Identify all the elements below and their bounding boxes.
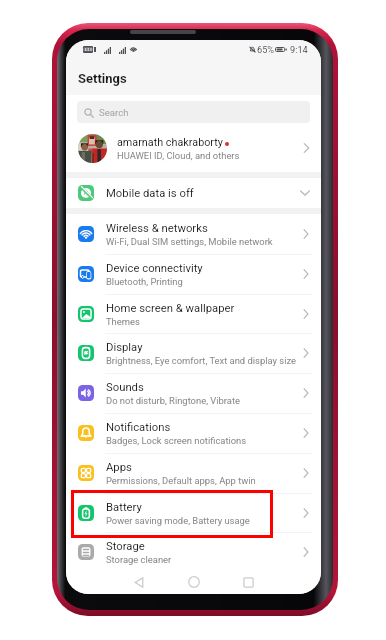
staticText: 9:14 — [290, 44, 308, 55]
button[interactable]: Mobile data is off — [66, 178, 321, 208]
button[interactable]: Battery — [66, 493, 321, 533]
button[interactable]: Home — [184, 572, 204, 592]
button[interactable]: Apps — [66, 453, 321, 493]
button[interactable]: Wireless & networks — [66, 214, 321, 254]
staticText: Settings — [78, 71, 127, 86]
staticText: Permissions, Default apps, App twin — [106, 475, 256, 486]
staticText: Device connectivity — [106, 262, 203, 275]
staticText: Brightness, Eye comfort, Text and displa… — [106, 355, 296, 366]
staticText: Wireless & networks — [106, 222, 208, 235]
staticText: Display — [106, 341, 143, 354]
staticText: Bluetooth, Printing — [106, 276, 183, 287]
button[interactable]: Sounds — [66, 373, 321, 413]
button[interactable]: Notifications — [66, 413, 321, 453]
staticText: Search — [99, 107, 129, 118]
button[interactable]: Home screen & wallpaper — [66, 294, 321, 334]
staticText: Storage — [106, 540, 145, 553]
staticText: Badges, Lock screen notifications — [106, 435, 247, 446]
button[interactable]: Display — [66, 333, 321, 373]
staticText: Power saving mode, Battery usage — [106, 515, 250, 526]
staticText: Battery — [106, 501, 142, 514]
button[interactable]: Recent apps — [238, 572, 258, 592]
button[interactable]: amarnath chakraborty — [66, 123, 321, 172]
staticText: Notifications — [106, 421, 171, 434]
staticText: amarnath chakraborty — [117, 136, 223, 149]
staticText: Sounds — [106, 381, 144, 394]
staticText: HUAWEI ID, Cloud, and others — [117, 150, 240, 161]
staticText: Home screen & wallpaper — [106, 302, 235, 315]
staticText: Mobile data is off — [106, 187, 194, 200]
button[interactable]: Storage — [66, 532, 321, 572]
staticText: 65% — [257, 44, 275, 55]
button[interactable]: Search — [77, 101, 310, 123]
staticText: Do not disturb, Ringtone, Vibrate — [106, 395, 240, 406]
staticText: Themes — [106, 316, 140, 327]
button[interactable]: Device connectivity — [66, 254, 321, 294]
staticText: Apps — [106, 461, 132, 474]
staticText: Storage cleaner — [106, 554, 172, 565]
button[interactable]: Back — [129, 572, 149, 592]
staticText: Wi-Fi, Dual SIM settings, Mobile network — [106, 236, 273, 247]
